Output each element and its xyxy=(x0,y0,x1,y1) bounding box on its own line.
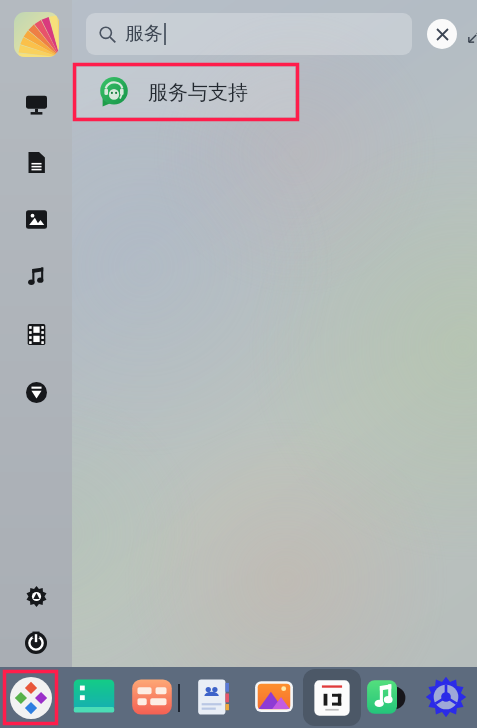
button[interactable]: 服务 xyxy=(86,13,412,55)
button[interactable]: Pictures xyxy=(22,205,50,233)
button[interactable]: Settings xyxy=(22,582,50,610)
button[interactable]: Music xyxy=(364,675,408,719)
staticText: 服务 xyxy=(125,22,163,46)
button[interactable]: 服务与支持 xyxy=(77,67,295,117)
button[interactable]: User avatar xyxy=(14,12,59,57)
button[interactable]: Music xyxy=(22,263,50,291)
button[interactable]: Videos xyxy=(22,320,50,348)
button[interactable]: Calendar xyxy=(303,669,361,726)
button[interactable]: Computer xyxy=(22,90,50,118)
button[interactable]: Downloads xyxy=(22,378,50,406)
staticText: 服务与支持 xyxy=(148,80,248,105)
button[interactable]: Settings xyxy=(424,675,468,719)
button[interactable]: Documents xyxy=(22,148,50,176)
button[interactable]: Power xyxy=(22,629,50,657)
button[interactable]: Photos xyxy=(252,675,296,719)
button[interactable]: Expand xyxy=(462,20,477,48)
button[interactable]: Contacts xyxy=(192,675,236,719)
button[interactable]: Launcher xyxy=(10,677,52,719)
button[interactable]: Terminal xyxy=(72,675,116,719)
button[interactable]: App grid xyxy=(130,675,174,719)
button[interactable]: Clear search xyxy=(427,19,457,49)
